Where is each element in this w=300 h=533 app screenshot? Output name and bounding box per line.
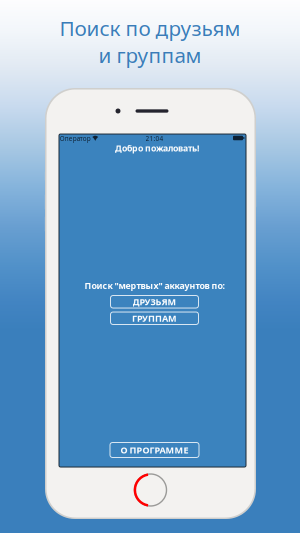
button[interactable]: ГРУППАМ — [110, 312, 198, 324]
staticText: Поиск по друзьям — [59, 14, 240, 42]
staticText: 21:04 — [145, 134, 163, 143]
staticText: О ПРОГРАММЕ — [120, 444, 188, 456]
staticText: Добро пожаловать! — [115, 142, 199, 154]
staticText: Поиск "мертвых" аккаунтов по: — [84, 279, 224, 291]
staticText: и группам — [98, 41, 201, 69]
button[interactable]: ДРУЗЬЯМ — [110, 295, 198, 308]
button[interactable]: О ПРОГРАММЕ — [110, 442, 199, 457]
staticText: ДРУЗЬЯМ — [132, 296, 176, 308]
staticText: Оператор — [60, 134, 91, 143]
staticText: ГРУППАМ — [132, 312, 177, 324]
